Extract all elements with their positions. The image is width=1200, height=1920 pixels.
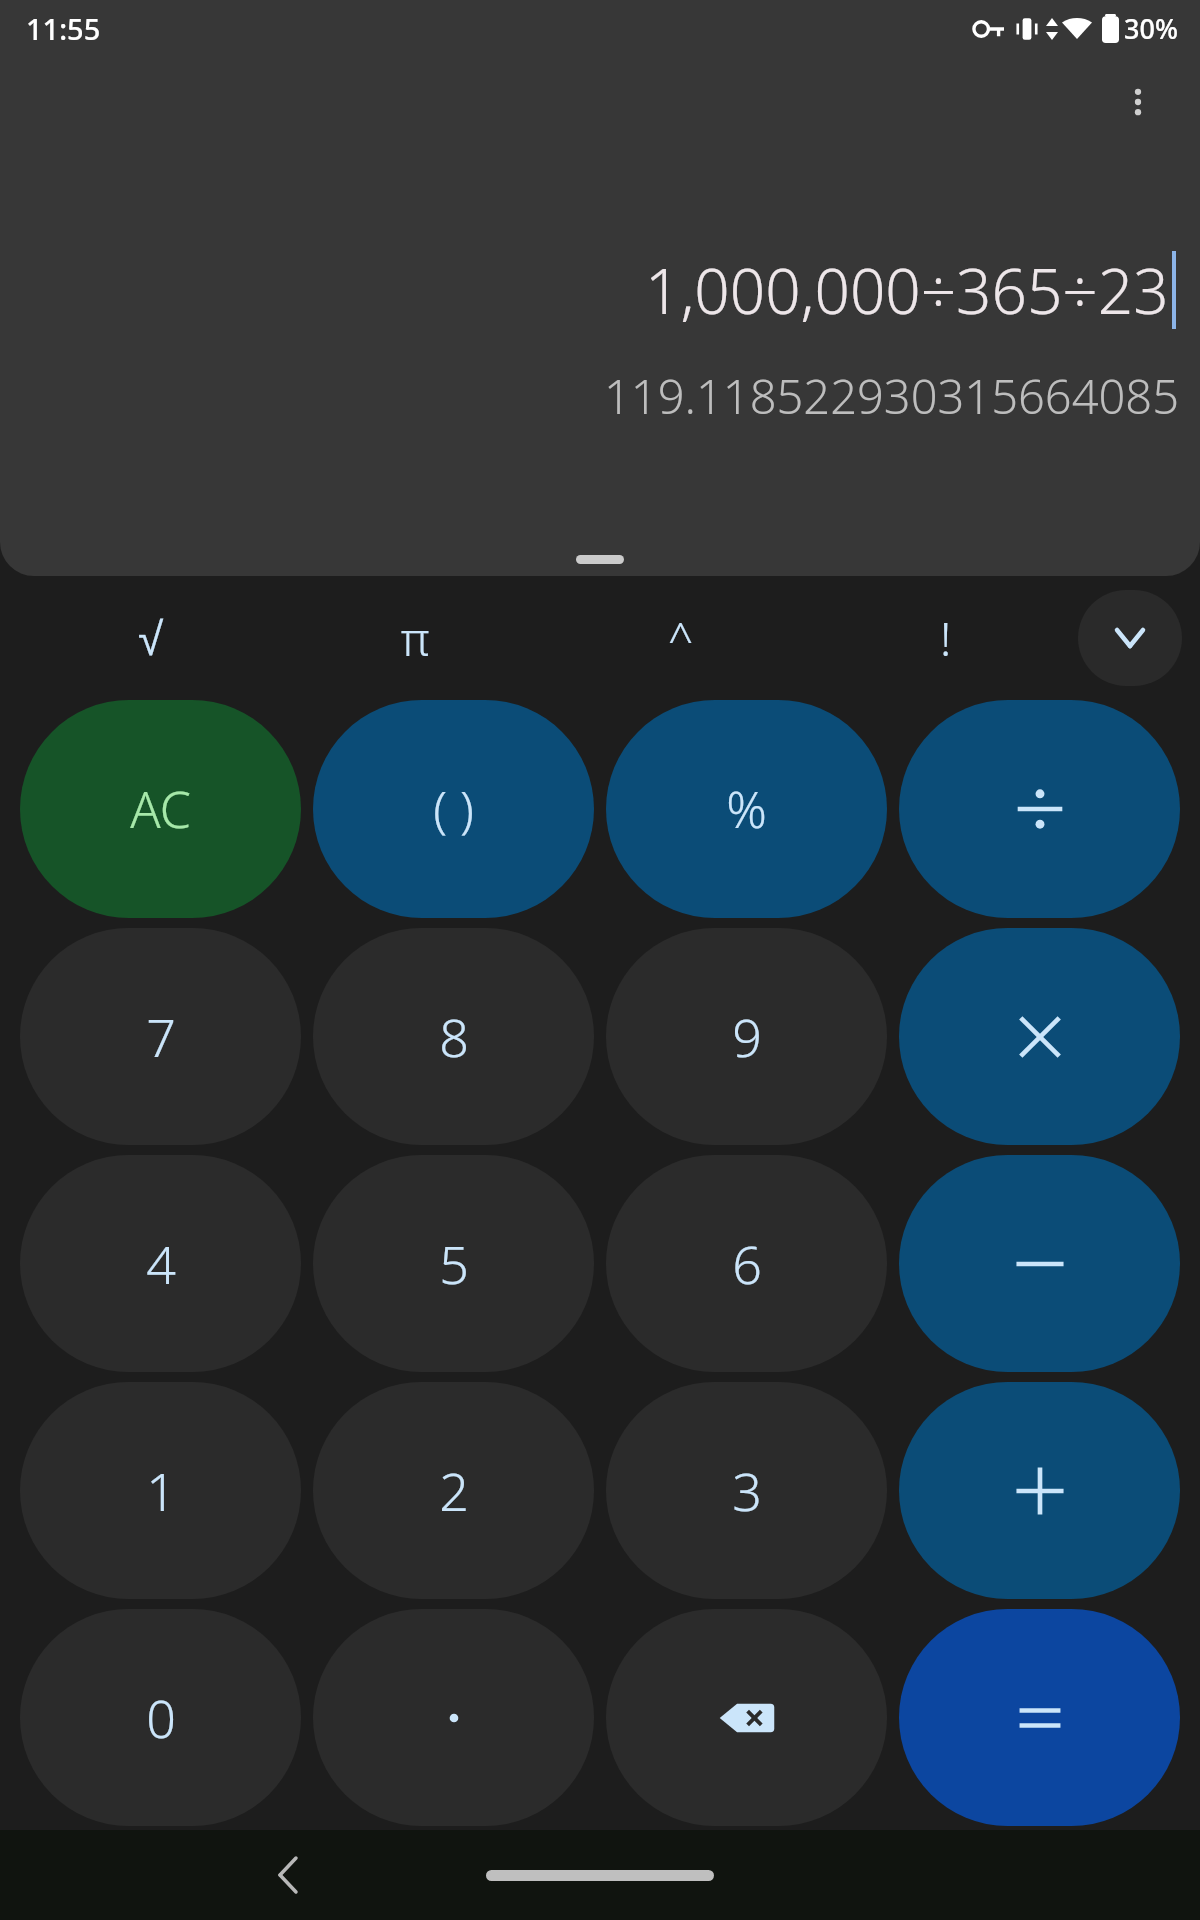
button[interactable]: 9 (606, 928, 887, 1145)
button[interactable]: π (283, 586, 548, 690)
button[interactable]: √ (18, 586, 283, 690)
button[interactable]: ^ (548, 586, 813, 690)
button[interactable]: 8 (313, 928, 594, 1145)
button[interactable]: Multiply (899, 928, 1180, 1145)
button[interactable]: 1 (20, 1382, 301, 1599)
staticText: 11:55 (26, 9, 101, 48)
button[interactable]: 1,000,000÷365÷23 (24, 248, 1176, 332)
staticText: 6 (732, 1228, 762, 1299)
button[interactable]: Equals (899, 1609, 1180, 1826)
button[interactable]: % (606, 700, 887, 918)
button[interactable]: Plus (899, 1382, 1180, 1599)
staticText: 119.118522930315664085 (604, 364, 1180, 428)
staticText: ( ) (433, 775, 474, 843)
button[interactable]: 0 (20, 1609, 301, 1826)
staticText: 0 (146, 1682, 176, 1753)
button[interactable]: ! (813, 586, 1078, 690)
button[interactable]: Expand (1078, 590, 1182, 686)
button[interactable]: AC (20, 700, 301, 918)
button[interactable]: 4 (20, 1155, 301, 1372)
staticText: 8 (439, 1001, 469, 1072)
staticText: 1,000,000÷365÷23 (645, 248, 1169, 332)
button[interactable]: 119.118522930315664085 (20, 364, 1180, 428)
button[interactable]: Minus (899, 1155, 1180, 1372)
button[interactable]: Decimal point (313, 1609, 594, 1826)
button[interactable]: ( ) (313, 700, 594, 918)
button[interactable]: Divide (899, 700, 1180, 918)
staticText: 3 (732, 1455, 762, 1526)
button[interactable]: More options (1102, 66, 1174, 138)
staticText: ^ (668, 608, 694, 668)
staticText: 9 (732, 1001, 762, 1072)
staticText: π (401, 607, 430, 670)
staticText: 30% (1124, 10, 1178, 47)
button[interactable]: 3 (606, 1382, 887, 1599)
staticText: % (726, 775, 767, 843)
staticText: 4 (146, 1228, 176, 1299)
staticText: 2 (439, 1455, 469, 1526)
staticText: 1 (146, 1455, 176, 1526)
button[interactable]: Back (260, 1847, 316, 1903)
staticText: √ (138, 613, 164, 664)
staticText: ! (940, 607, 952, 670)
button[interactable]: Backspace (606, 1609, 887, 1826)
button[interactable]: 7 (20, 928, 301, 1145)
button[interactable]: 6 (606, 1155, 887, 1372)
staticText: 7 (146, 1001, 176, 1072)
staticText: 5 (439, 1228, 469, 1299)
button[interactable]: 5 (313, 1155, 594, 1372)
staticText: AC (130, 775, 191, 843)
button[interactable]: 2 (313, 1382, 594, 1599)
